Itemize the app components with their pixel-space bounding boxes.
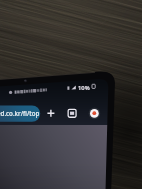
button[interactable]: Switch or close tabs xyxy=(65,105,79,121)
button[interactable]: New tab xyxy=(44,105,58,121)
staticText: 10% xyxy=(78,84,90,92)
staticText: ed.co.kr/fi/top xyxy=(0,109,40,117)
button[interactable]: Search or type web address xyxy=(0,105,43,122)
button[interactable]: Account xyxy=(88,106,101,120)
